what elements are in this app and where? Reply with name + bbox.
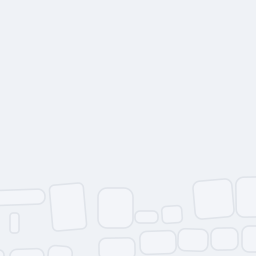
button[interactable]: Tile 4 <box>51 184 85 230</box>
button[interactable]: Tile 6 <box>135 211 158 223</box>
button[interactable]: Tile 9 <box>236 177 256 217</box>
button[interactable]: Tile 12 <box>48 246 72 256</box>
button[interactable]: Tile 10 <box>0 250 4 256</box>
button[interactable]: Tile 7 <box>162 206 182 223</box>
button[interactable]: Tile 15 <box>178 229 208 251</box>
button[interactable]: Tile 14 <box>140 231 176 254</box>
button[interactable]: Tile 13 <box>99 238 135 256</box>
button[interactable]: Tile 8 <box>194 180 233 218</box>
button[interactable]: Tile 17 <box>242 226 256 252</box>
button[interactable]: Tile 3 <box>0 190 45 205</box>
button[interactable]: Tile 16 <box>211 228 238 250</box>
button[interactable]: Tile 5 <box>98 188 133 228</box>
button[interactable]: Tile 2 <box>10 213 19 233</box>
button[interactable]: Tile 11 <box>10 249 44 256</box>
